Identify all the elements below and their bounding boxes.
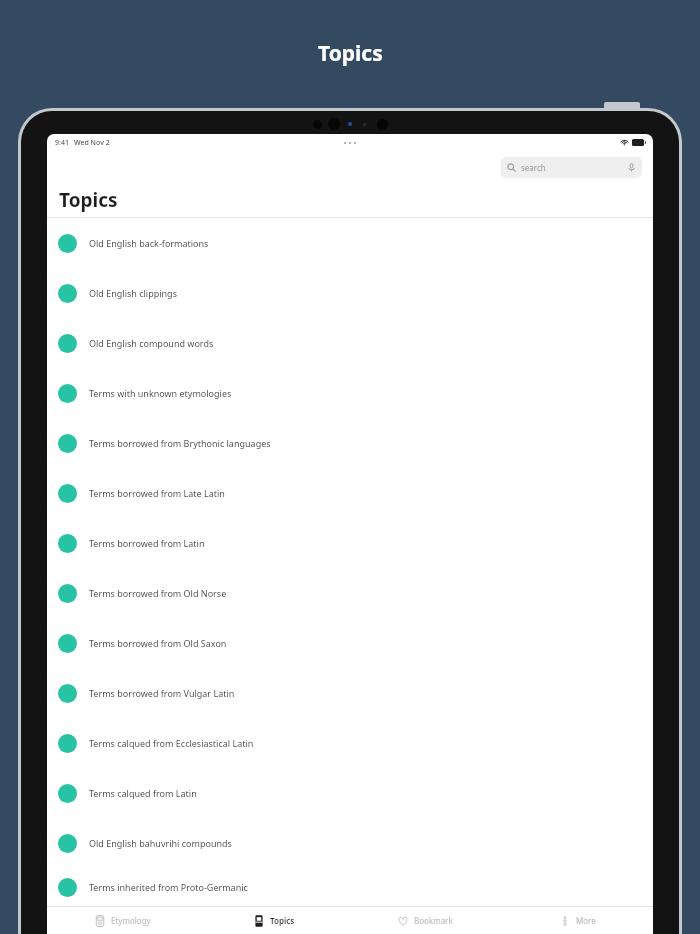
button[interactable]: Old English back-formations	[47, 218, 653, 268]
button[interactable]: Bookmark	[349, 907, 501, 934]
staticText: Terms inherited from Proto-Germanic	[89, 881, 248, 893]
button[interactable]: Etymology	[47, 907, 198, 934]
button[interactable]: Terms borrowed from Late Latin	[47, 468, 653, 518]
staticText: More	[576, 915, 596, 926]
button[interactable]: Old English compound words	[47, 318, 653, 368]
staticText: Old English compound words	[89, 337, 214, 349]
button[interactable]: More	[501, 907, 653, 934]
staticText: Terms borrowed from Vulgar Latin	[89, 687, 235, 699]
button[interactable]: Terms borrowed from Old Norse	[47, 568, 653, 618]
button[interactable]: Terms borrowed from Latin	[47, 518, 653, 568]
staticText: Old English bahuvrihi compounds	[89, 837, 232, 849]
staticText: Bookmark	[414, 915, 453, 926]
staticText: Topics	[318, 39, 383, 68]
button[interactable]: Topics	[198, 907, 349, 934]
staticText: Terms calqued from Latin	[89, 787, 197, 799]
staticText: Etymology	[111, 915, 151, 926]
button[interactable]: Terms inherited from Proto-Germanic	[47, 868, 653, 906]
button[interactable]: search	[501, 157, 642, 178]
button[interactable]: Old English clippings	[47, 268, 653, 318]
button[interactable]: Terms with unknown etymologies	[47, 368, 653, 418]
staticText: Topics	[270, 915, 295, 926]
staticText: Old English back-formations	[89, 237, 209, 249]
staticText: Old English clippings	[89, 287, 177, 299]
staticText: Terms borrowed from Latin	[89, 537, 205, 549]
staticText: Terms borrowed from Late Latin	[89, 487, 225, 499]
button[interactable]: Terms borrowed from Vulgar Latin	[47, 668, 653, 718]
button[interactable]: Terms borrowed from Old Saxon	[47, 618, 653, 668]
staticText: Terms with unknown etymologies	[89, 387, 232, 399]
staticText: Wed Nov 2	[74, 138, 110, 148]
button[interactable]: Terms calqued from Ecclesiastical Latin	[47, 718, 653, 768]
staticText: Terms borrowed from Brythonic languages	[89, 437, 271, 449]
staticText: Topics	[59, 187, 118, 213]
staticText: Terms calqued from Ecclesiastical Latin	[89, 737, 254, 749]
staticText: Terms borrowed from Old Norse	[89, 587, 227, 599]
staticText: search	[521, 162, 627, 173]
button[interactable]: Terms calqued from Latin	[47, 768, 653, 818]
staticText: 9:41	[55, 138, 69, 148]
staticText: Terms borrowed from Old Saxon	[89, 637, 227, 649]
button[interactable]: Old English bahuvrihi compounds	[47, 818, 653, 868]
button[interactable]: Terms borrowed from Brythonic languages	[47, 418, 653, 468]
